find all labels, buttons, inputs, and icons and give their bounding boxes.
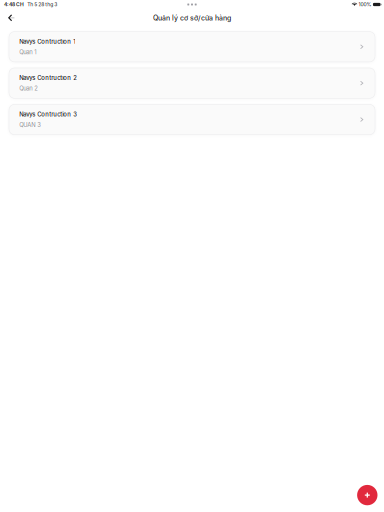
button[interactable]: Navys Contruction 2 <box>9 68 375 98</box>
staticText: 100% <box>359 1 372 7</box>
button[interactable]: Add store <box>357 485 377 505</box>
staticText: Navys Contruction 2 <box>19 74 77 81</box>
staticText: 4:48 CH <box>4 1 24 7</box>
button[interactable]: Navys Contruction 1 <box>9 32 375 62</box>
staticText: Quan 2 <box>19 85 38 92</box>
staticText: Quan 1 <box>19 48 36 55</box>
staticText: Quản lý cơ sở/cửa hàng <box>153 14 231 22</box>
button[interactable]: Navys Contruction 3 <box>9 104 375 135</box>
staticText: Navys Contruction 1 <box>19 38 75 45</box>
staticText: Navys Contruction 3 <box>19 111 77 118</box>
staticText: QUAN 3 <box>19 121 41 128</box>
button[interactable]: Back <box>0 12 22 24</box>
staticText: Th 5 28 thg 3 <box>27 1 57 7</box>
